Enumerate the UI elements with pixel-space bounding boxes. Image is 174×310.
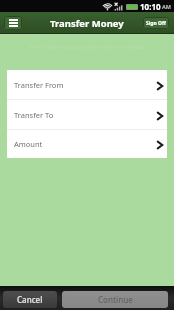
staticText: Transfer From — [14, 80, 64, 90]
button[interactable]: Amount — [7, 130, 167, 158]
button[interactable]: Transfer To — [7, 100, 167, 129]
staticText: Continue — [98, 294, 133, 305]
staticText: Transfer To — [14, 110, 54, 120]
staticText: Cancel — [17, 294, 43, 305]
staticText: Transfer Money — [50, 17, 124, 30]
staticText: Sign Off — [146, 20, 166, 27]
button[interactable]: Continue — [62, 291, 168, 308]
staticText: 10:10 — [140, 1, 161, 12]
button[interactable]: Transfer From — [7, 70, 167, 99]
button[interactable]: Cancel — [3, 291, 57, 308]
button[interactable]: Menu — [4, 16, 22, 30]
button[interactable]: Sign Off — [143, 17, 169, 29]
staticText: AM — [162, 3, 171, 10]
staticText: Amount — [14, 139, 43, 149]
